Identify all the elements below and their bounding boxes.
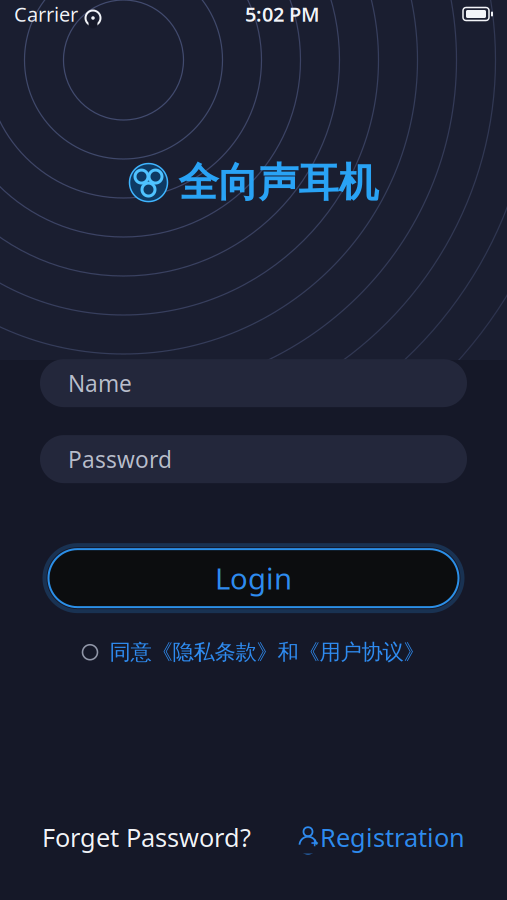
staticText: Carrier — [14, 1, 78, 27]
staticText: 全向声耳机 — [178, 158, 378, 207]
staticText: Registration — [320, 820, 465, 854]
staticText: + — [311, 834, 319, 852]
staticText: Login — [215, 559, 292, 598]
button[interactable]: Forget Password? — [42, 814, 251, 860]
button[interactable]: Password — [40, 435, 467, 483]
staticText: Name — [68, 368, 132, 398]
staticText: 同意《隐私条款》和《用户协议》 — [109, 639, 424, 665]
button[interactable]: + — [298, 814, 465, 860]
staticText: 5:02 PM — [245, 1, 320, 27]
staticText: Forget Password? — [42, 820, 251, 854]
button[interactable]: Name — [40, 359, 467, 407]
button[interactable]: Login — [44, 545, 462, 611]
staticText: Password — [68, 444, 172, 474]
button[interactable]: 同意《隐私条款》和《用户协议》 — [82, 633, 424, 671]
